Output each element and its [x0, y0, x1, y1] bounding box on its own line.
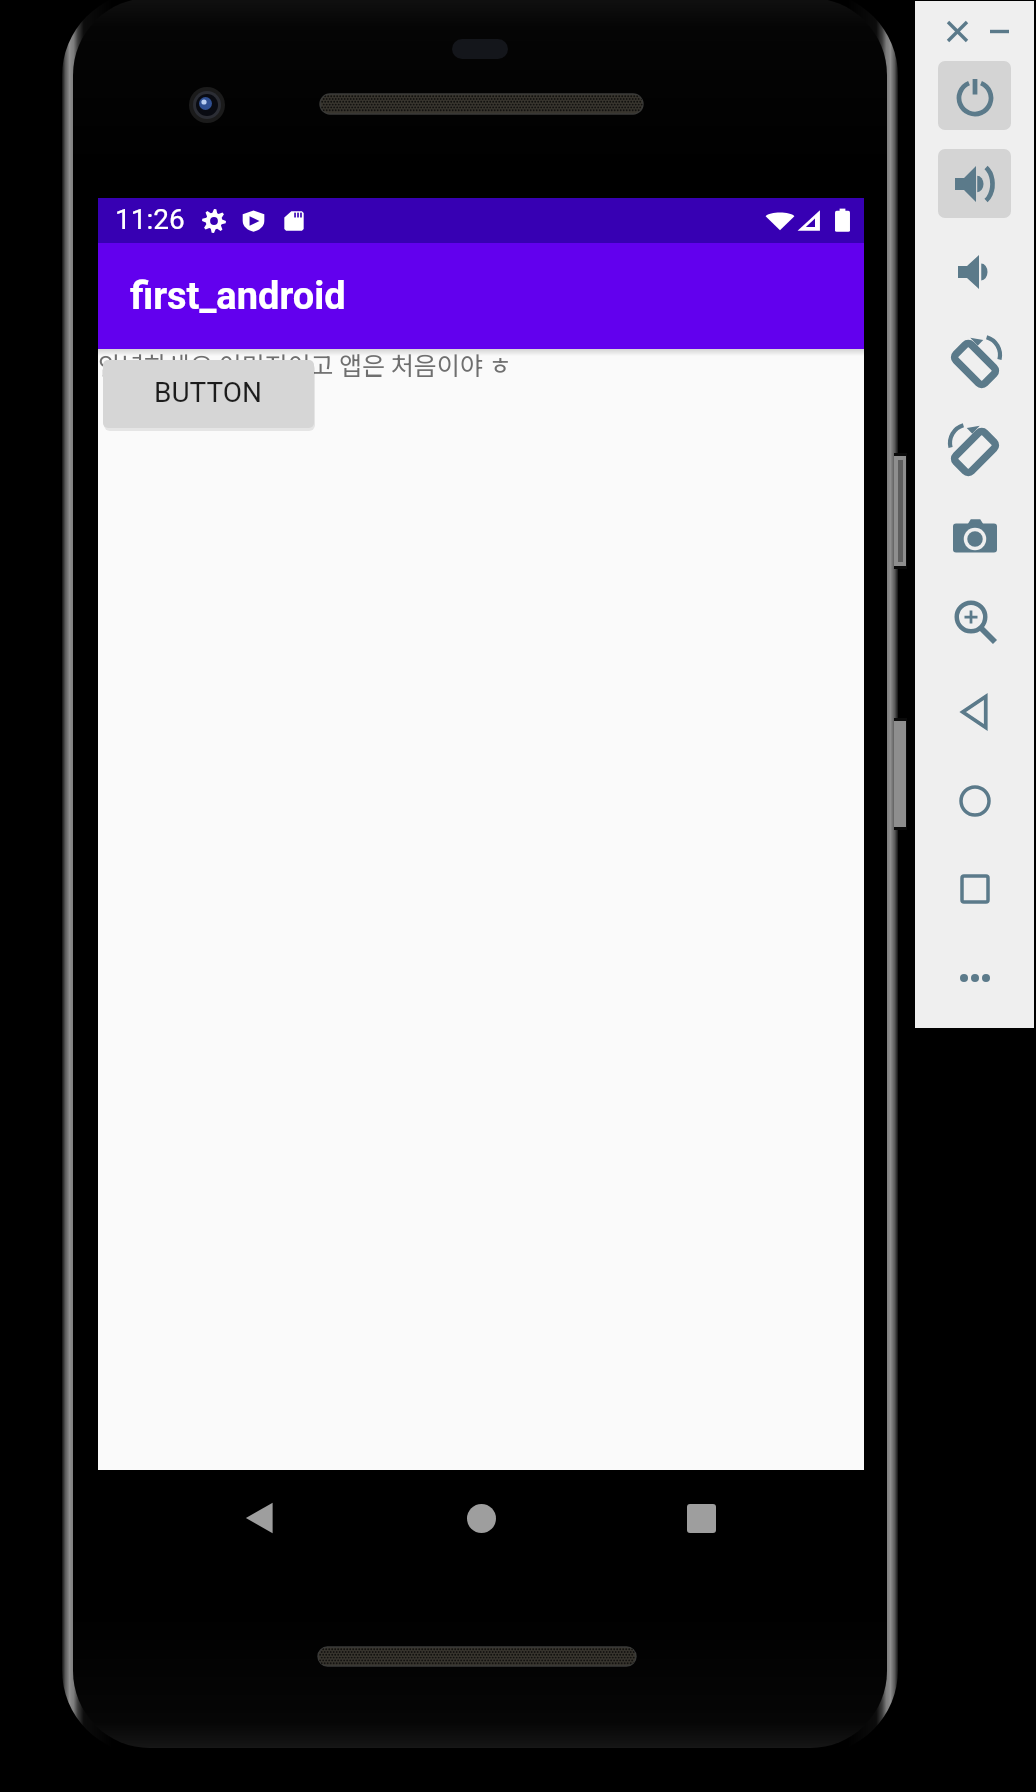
button[interactable]: Back	[938, 677, 1011, 746]
button[interactable]: Home	[449, 1486, 513, 1550]
button[interactable]: Rotate left	[938, 325, 1011, 394]
button[interactable]: Rotate right	[938, 413, 1011, 482]
button[interactable]: first_android	[98, 243, 864, 349]
button[interactable]: Home	[938, 766, 1011, 835]
button[interactable]: BUTTON	[103, 360, 314, 428]
staticText: 안녕하세요 이미지이고 앱은 처음이야 ㅎ	[98, 346, 512, 382]
button[interactable]: Close	[935, 9, 979, 53]
button[interactable]: Power	[938, 61, 1011, 130]
button[interactable]: More	[938, 943, 1011, 1012]
button[interactable]: Volume up	[938, 149, 1011, 218]
button[interactable]: Recent apps	[669, 1486, 733, 1550]
button[interactable]: Screenshot	[938, 501, 1011, 570]
staticText: first_android	[130, 274, 346, 319]
staticText: BUTTON	[154, 376, 263, 409]
button[interactable]: Zoom	[938, 588, 1011, 657]
button[interactable]: Back	[228, 1486, 292, 1550]
button[interactable]: Minimize	[977, 9, 1021, 53]
button[interactable]: Volume down	[938, 237, 1011, 306]
staticText: 11:26	[115, 203, 185, 236]
button[interactable]: Overview	[938, 854, 1011, 923]
